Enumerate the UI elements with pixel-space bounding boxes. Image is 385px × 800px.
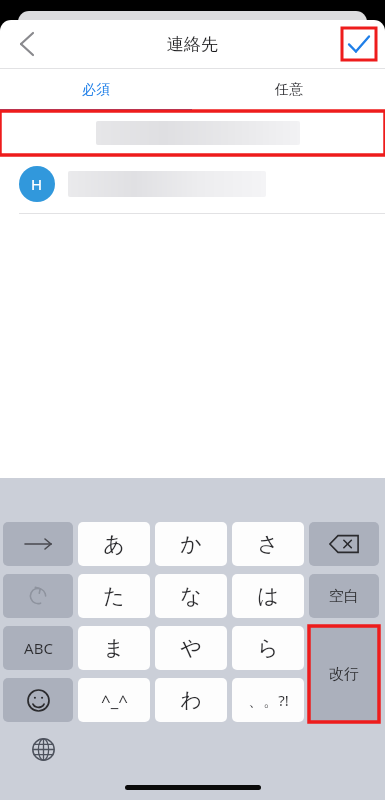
button[interactable]: Emoji	[3, 678, 73, 722]
button[interactable]: 、。?!	[232, 678, 304, 722]
staticText: ら	[257, 635, 279, 661]
button[interactable]: あ	[78, 522, 150, 566]
button[interactable]: た	[78, 574, 150, 618]
staticText: ま	[103, 635, 125, 661]
button[interactable]: Back	[0, 20, 52, 68]
staticText: は	[257, 583, 279, 609]
staticText: ABC	[24, 638, 53, 658]
staticText: あ	[103, 531, 125, 557]
staticText: 、。?!	[248, 690, 289, 710]
staticText: さ	[257, 531, 279, 557]
button[interactable]: ま	[78, 626, 150, 670]
button[interactable]: Change keyboard	[24, 730, 62, 768]
button[interactable]: Next candidate	[3, 522, 73, 566]
button[interactable]: ^_^	[78, 678, 150, 722]
staticText: た	[103, 583, 125, 609]
staticText: わ	[180, 687, 202, 713]
staticText: な	[180, 583, 202, 609]
staticText: 任意	[275, 81, 303, 99]
button[interactable]: や	[155, 626, 227, 670]
staticText: 改行	[329, 665, 359, 684]
staticText: 必須	[82, 81, 110, 99]
staticText: 空白	[329, 587, 359, 606]
button[interactable]: 任意	[192, 69, 385, 111]
button[interactable]: か	[155, 522, 227, 566]
button[interactable]	[96, 121, 300, 145]
button[interactable]: Backspace	[309, 522, 379, 566]
staticText: か	[180, 531, 202, 557]
staticText: H	[31, 174, 43, 194]
button[interactable]: 改行	[309, 626, 379, 722]
button[interactable]: H	[0, 155, 385, 213]
button[interactable]: わ	[155, 678, 227, 722]
button[interactable]: さ	[232, 522, 304, 566]
button[interactable]: 必須	[0, 69, 192, 111]
button[interactable]: 空白	[309, 574, 379, 618]
button[interactable]: は	[232, 574, 304, 618]
staticText: や	[180, 635, 202, 661]
button[interactable]: Undo	[3, 574, 73, 618]
staticText: 連絡先	[167, 34, 218, 55]
button[interactable]: ABC	[3, 626, 73, 670]
button[interactable]: な	[155, 574, 227, 618]
staticText: ^_^	[101, 689, 128, 712]
button[interactable]: Done	[333, 20, 385, 68]
button[interactable]: ら	[232, 626, 304, 670]
